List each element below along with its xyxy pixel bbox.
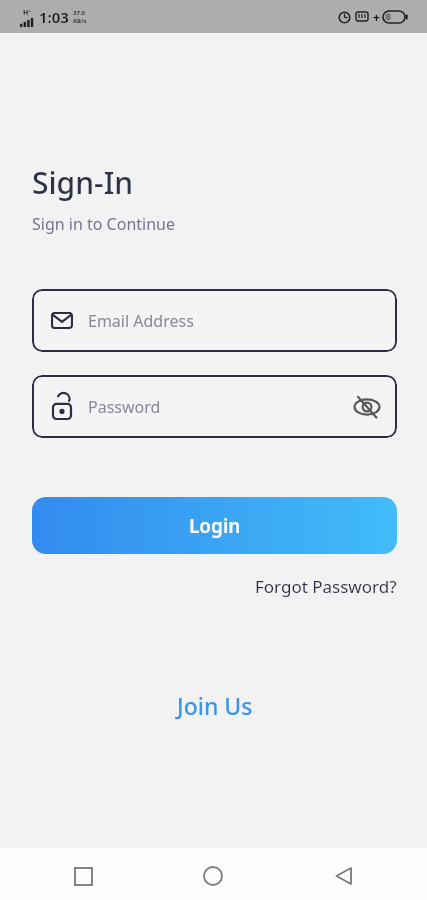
button[interactable]: Password — [32, 375, 397, 438]
staticText: Join Us — [177, 690, 253, 721]
button[interactable] — [19, 848, 148, 900]
staticText: + — [373, 9, 380, 25]
staticText: H⁺ — [23, 8, 31, 18]
staticText: Login — [189, 513, 241, 539]
button[interactable]: Login — [32, 497, 397, 554]
staticText: KB/s — [73, 17, 87, 25]
button[interactable]: Email Address — [32, 289, 397, 352]
staticText: Forgot Password? — [255, 575, 397, 598]
button[interactable] — [148, 848, 278, 900]
button[interactable]: Forgot Password? — [255, 575, 397, 598]
button[interactable] — [354, 395, 380, 419]
staticText: Sign-In — [32, 162, 134, 203]
staticText: Sign in to Continue — [32, 213, 175, 235]
button[interactable]: Join Us — [177, 690, 253, 721]
staticText: 1:03 — [39, 7, 69, 27]
staticText: 37.0 — [73, 9, 85, 17]
button[interactable] — [278, 848, 408, 900]
staticText: Password — [88, 396, 161, 418]
staticText: Email Address — [88, 310, 194, 332]
